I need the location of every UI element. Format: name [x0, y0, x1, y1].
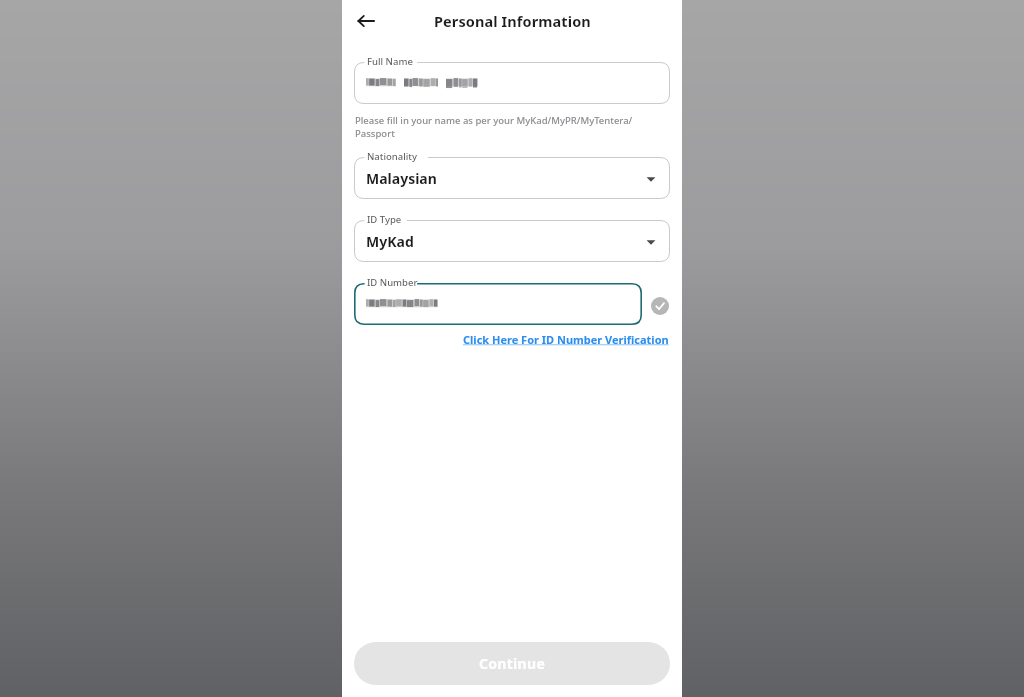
button[interactable]: Back [346, 1, 386, 41]
staticText: Nationality [367, 150, 417, 163]
other: Open ID type list [645, 236, 657, 248]
button[interactable]: MyKad [354, 212, 670, 262]
staticText: Passport [355, 127, 395, 140]
button[interactable]: Continue [354, 642, 670, 685]
button[interactable]: Click Here For ID Number Verification [463, 332, 669, 347]
other: Open nationality list [645, 173, 657, 185]
staticText: ID Type [367, 213, 402, 226]
staticText: ID Number [367, 276, 418, 289]
staticText: Full Name [367, 55, 413, 68]
staticText: MyKad [366, 232, 414, 251]
button[interactable]: ID number verified [650, 296, 670, 316]
staticText: Malaysian [366, 169, 437, 188]
button[interactable]: ID Number [354, 275, 642, 325]
staticText: Continue [479, 654, 546, 673]
staticText: Please fill in your name as per your MyK… [355, 114, 633, 127]
button[interactable]: Malaysian [354, 149, 670, 199]
staticText: Click Here For ID Number Verification [463, 332, 669, 347]
staticText: Personal Information [434, 11, 591, 31]
